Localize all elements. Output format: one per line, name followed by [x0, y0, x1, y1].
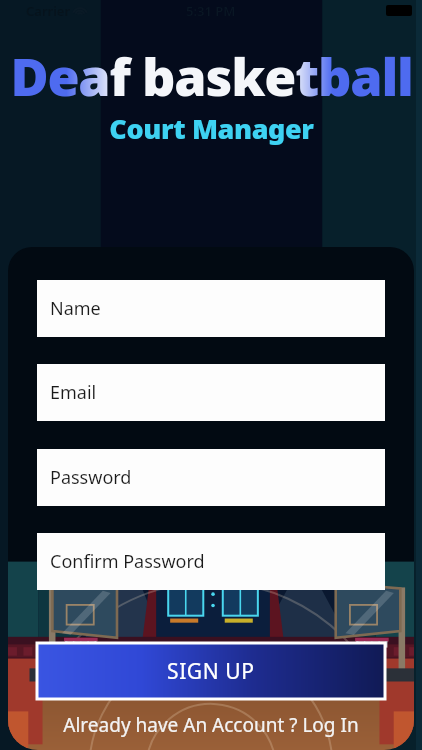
- staticText: Name: [50, 296, 101, 321]
- button[interactable]: SIGN UP: [37, 643, 385, 699]
- button[interactable]: Confirm Password: [37, 533, 385, 590]
- staticText: Already have An Account ? Log In: [63, 712, 359, 738]
- staticText: SIGN UP: [167, 657, 255, 686]
- staticText: Confirm Password: [50, 549, 205, 574]
- staticText: 5:31 PM: [186, 2, 236, 20]
- button[interactable]: Email: [37, 364, 385, 421]
- staticText: Email: [50, 380, 97, 405]
- staticText: Password: [50, 465, 132, 490]
- button[interactable]: Already have An Account ? Log In: [40, 708, 382, 742]
- staticText: Court Manager: [109, 110, 314, 146]
- button[interactable]: Name: [37, 280, 385, 337]
- staticText: Deaf basketball: [10, 40, 413, 98]
- button[interactable]: Password: [37, 449, 385, 506]
